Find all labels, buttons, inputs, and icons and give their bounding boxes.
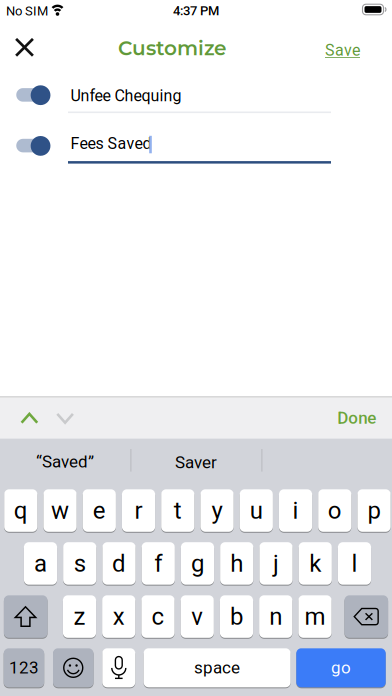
staticText: m [304,602,325,631]
button[interactable]: “Saved” [0,452,130,472]
button[interactable]: w [43,489,77,533]
button[interactable]: l [338,542,371,586]
staticText: j [273,549,279,577]
button[interactable]: t [161,489,194,533]
button[interactable]: Save [325,41,360,60]
button[interactable]: Unfee Chequing visible [15,85,50,105]
button[interactable]: g [181,542,214,586]
staticText: n [269,602,282,631]
staticText: f [154,549,162,577]
button[interactable]: Done [337,408,376,428]
button[interactable]: h [220,542,253,586]
button[interactable]: 123 [4,648,44,688]
staticText: space [194,658,240,678]
staticText: v [191,602,203,631]
staticText: o [328,496,342,525]
button[interactable]: Fees Saved visible [15,136,50,156]
button[interactable]: Account name: Unfee Chequing [68,86,331,113]
staticText: g [191,549,204,577]
button[interactable]: o [318,489,351,533]
button[interactable]: c [141,595,175,639]
button[interactable]: b [220,595,253,639]
staticText: Saver [175,452,217,472]
button[interactable]: Saver [130,452,261,472]
staticText: x [113,602,125,631]
button[interactable]: u [240,489,273,533]
button[interactable]: Close [7,30,41,64]
button[interactable]: m [298,595,332,639]
button[interactable]: k [299,542,332,586]
staticText: q [14,496,28,525]
button[interactable]: e [83,489,116,533]
button[interactable]: i [279,489,312,533]
staticText: Fees Saved [70,134,151,153]
button[interactable]: Emoji [53,648,93,688]
button[interactable]: Shift [4,595,47,639]
staticText: h [230,549,243,577]
staticText: y [211,496,222,525]
staticText: i [293,496,299,525]
staticText: Unfee Chequing [70,86,181,105]
staticText: u [250,496,263,525]
staticText: t [174,496,182,525]
button[interactable]: n [259,595,292,639]
staticText: a [34,549,47,577]
staticText: s [74,549,86,577]
staticText: r [135,496,143,525]
button[interactable]: go [296,648,386,688]
staticText: p [368,496,381,525]
button[interactable]: d [102,542,136,586]
staticText: b [230,602,243,631]
button[interactable]: s [63,542,96,586]
staticText: d [112,549,126,577]
button[interactable]: a [24,542,57,586]
button[interactable]: Delete [344,595,388,639]
button[interactable]: y [200,489,234,533]
staticText: k [309,549,321,577]
button[interactable]: v [181,595,214,639]
button[interactable]: f [142,542,175,586]
staticText: Customize [118,36,226,60]
button[interactable]: r [122,489,155,533]
button[interactable]: Next field [50,406,80,430]
staticText: z [73,602,85,631]
staticText: 123 [9,658,39,678]
button[interactable]: space [144,648,291,688]
button[interactable]: z [63,595,96,639]
button[interactable]: x [102,595,135,639]
staticText: go [331,658,351,678]
staticText: w [51,496,69,525]
staticText: e [93,496,106,525]
button[interactable]: p [357,489,391,533]
staticText: No SIM [6,3,48,19]
button[interactable]: Previous field [14,406,45,430]
staticText: Done [337,408,376,428]
staticText: c [151,602,164,631]
button[interactable]: j [259,542,293,586]
button[interactable]: q [4,489,37,533]
staticText: Save [325,41,360,60]
staticText: l [351,549,357,577]
staticText: “Saved” [36,452,94,472]
staticText: 4:37 PM [173,3,219,18]
button[interactable]: Account name: Fees Saved [68,134,331,164]
button[interactable]: Dictate [102,648,135,688]
